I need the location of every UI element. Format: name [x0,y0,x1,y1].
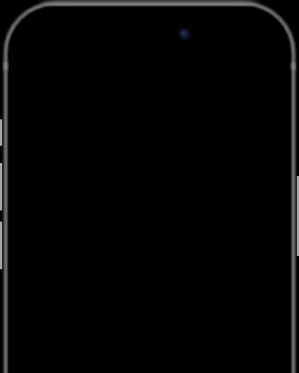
button[interactable]: Phone screen off [0,0,299,373]
